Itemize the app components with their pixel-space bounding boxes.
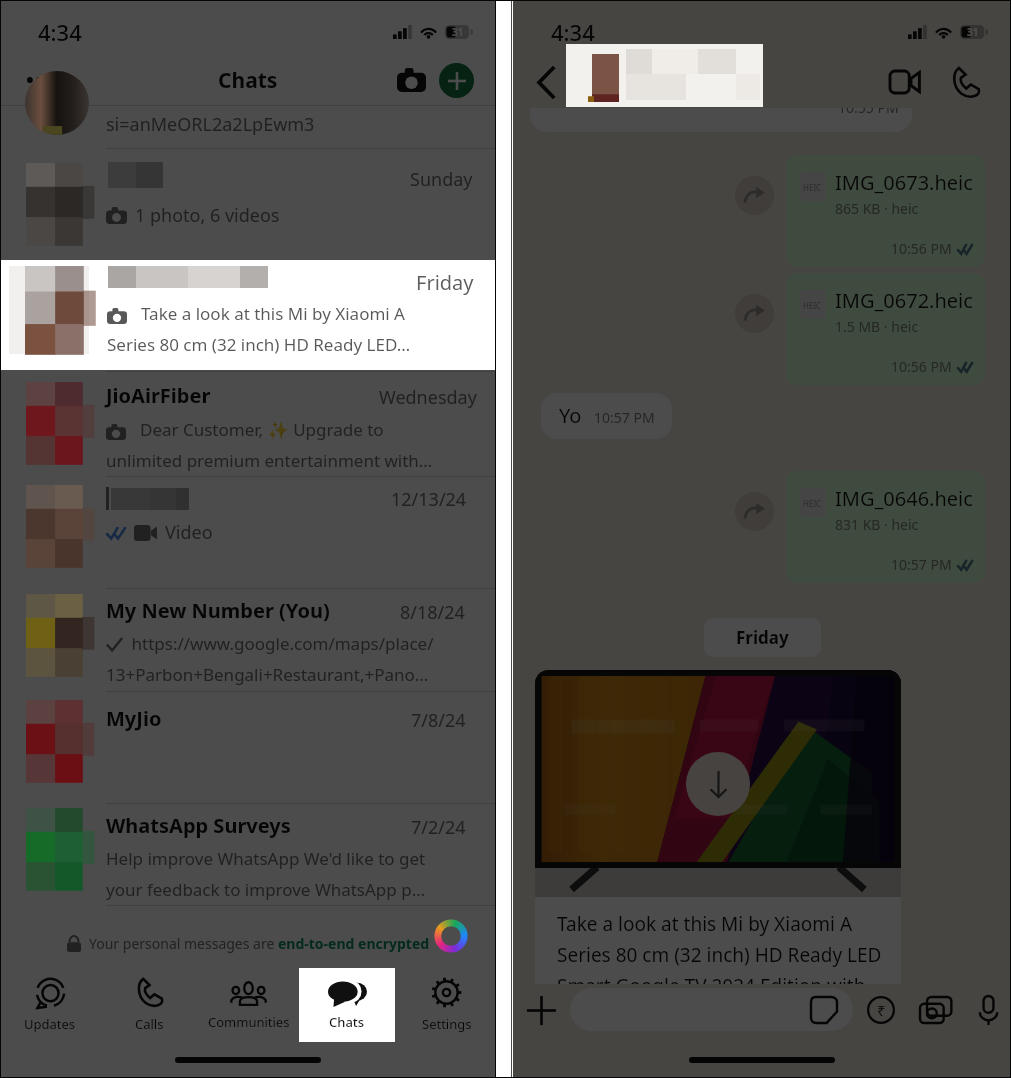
staticText: HEIC — [803, 182, 822, 193]
button[interactable]: Forward — [735, 294, 774, 333]
staticText: Sunday — [410, 167, 473, 192]
button[interactable]: Camera — [915, 989, 957, 1031]
button[interactable]: Voice call — [943, 60, 987, 104]
staticText: Take a look at this Mi by Xiaomi A Serie… — [557, 911, 882, 984]
staticText: 10:55 PM — [838, 98, 899, 117]
staticText: 12/13/24 — [391, 487, 467, 512]
button[interactable] — [0, 372, 496, 476]
button[interactable]: Attach — [522, 991, 560, 1029]
button[interactable] — [570, 988, 853, 1031]
staticText: IMG_0672.heic — [835, 287, 973, 314]
staticText: 865 KB · heic — [835, 199, 919, 218]
button[interactable]: HEIC — [786, 155, 985, 267]
staticText: 7/8/24 — [411, 708, 466, 733]
staticText: HEIC — [803, 498, 822, 509]
button[interactable]: Chats — [298, 966, 397, 1044]
staticText: Help improve WhatsApp We'd like to get y… — [106, 847, 426, 901]
button[interactable] — [0, 149, 496, 260]
staticText: MyJio — [106, 705, 162, 732]
staticText: IMG_0673.heic — [835, 169, 973, 196]
button[interactable]: Forward — [735, 492, 774, 531]
button[interactable] — [0, 692, 496, 803]
staticText: Chats — [329, 1013, 365, 1031]
staticText: si=anMeORL2a2LpEwm3 — [106, 112, 315, 137]
button[interactable] — [0, 477, 496, 588]
button[interactable] — [0, 804, 496, 905]
button[interactable]: More options — [20, 59, 62, 101]
button[interactable]: Download — [535, 670, 901, 984]
button[interactable]: Forward — [735, 176, 774, 215]
staticText: Dear Customer, ✨ Upgrade to unlimited pr… — [106, 418, 433, 472]
button[interactable]: Back — [527, 62, 567, 102]
staticText: Take a look at this Mi by Xiaomi A Serie… — [107, 302, 411, 356]
button[interactable] — [0, 589, 496, 691]
staticText: 10:56 PM — [891, 239, 952, 258]
button[interactable]: Download — [686, 752, 750, 816]
staticText: Communities — [208, 1013, 290, 1031]
staticText: 31 — [452, 25, 464, 39]
staticText: https://www.google.com/maps/place/ 13+Pa… — [106, 632, 434, 686]
button[interactable]: Friday — [704, 618, 821, 657]
button[interactable]: Payments — [862, 991, 900, 1029]
staticText: Yo — [559, 402, 582, 429]
button[interactable]: HEIC — [786, 273, 985, 385]
staticText: My New Number (You) — [106, 597, 330, 624]
staticText: Your personal messages are — [89, 934, 278, 953]
button[interactable]: HEIC — [786, 471, 985, 583]
staticText: JioAirFiber — [106, 382, 211, 409]
staticText: Chats — [218, 66, 278, 95]
button[interactable]: Contact info — [566, 44, 763, 107]
button[interactable]: New chat — [439, 63, 474, 98]
staticText: 31 — [967, 25, 979, 39]
staticText: 7/2/24 — [411, 815, 466, 840]
staticText: 831 KB · heic — [835, 515, 919, 534]
button[interactable]: Communities — [199, 966, 298, 1044]
staticText: Take a look at this Mi by Xiaomi A Serie… — [107, 302, 411, 356]
button[interactable]: Video call — [883, 60, 927, 104]
staticText: 10:57 PM — [891, 555, 952, 574]
staticText: HEIC — [803, 300, 822, 311]
staticText: document format — [547, 98, 713, 113]
staticText: Video — [165, 520, 213, 545]
button[interactable]: Voice message — [969, 991, 1007, 1029]
staticText: 4:34 — [551, 17, 595, 47]
button[interactable]: Camera — [391, 60, 431, 100]
button[interactable]: Settings — [397, 966, 496, 1044]
staticText: 4:34 — [38, 17, 82, 47]
staticText: end-to-end encrypted — [278, 934, 430, 953]
button[interactable]: Chats — [299, 968, 395, 1042]
button[interactable]: Calls — [100, 966, 199, 1044]
staticText: Friday — [416, 269, 474, 296]
staticText: Chats — [330, 1013, 365, 1031]
staticText: Settings — [422, 1015, 472, 1033]
staticText: 10:57 PM — [594, 408, 655, 427]
staticText: 10:56 PM — [891, 357, 952, 376]
staticText: 1.5 MB · heic — [835, 317, 919, 336]
staticText: Friday — [736, 626, 789, 649]
staticText: 1 photo, 6 videos — [135, 203, 280, 228]
button[interactable]: Updates — [0, 966, 100, 1044]
staticText: Calls — [135, 1015, 164, 1033]
button[interactable]: Yo — [541, 393, 672, 439]
staticText: Friday — [416, 269, 474, 296]
button[interactable] — [0, 97, 496, 147]
staticText: Wednesday — [379, 385, 477, 410]
staticText: 8/18/24 — [400, 600, 465, 625]
staticText: ₹ — [877, 1000, 886, 1020]
button[interactable]: Friday — [0, 260, 496, 370]
staticText: IMG_0646.heic — [835, 485, 973, 512]
staticText: Updates — [24, 1015, 76, 1033]
staticText: WhatsApp Surveys — [106, 812, 291, 839]
